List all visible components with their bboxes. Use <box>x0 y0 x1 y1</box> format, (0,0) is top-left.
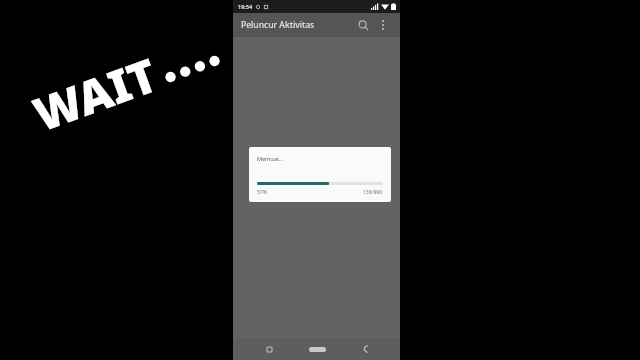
button[interactable]: Search <box>354 16 372 34</box>
button[interactable]: Back <box>357 341 373 357</box>
button[interactable]: More options <box>374 16 392 34</box>
staticText: 19:54 <box>238 3 253 10</box>
staticText: WAIT <box>25 43 166 145</box>
staticText: 57% <box>257 189 267 196</box>
staticText: Peluncur Aktivitas <box>241 19 315 31</box>
button[interactable]: Home <box>261 341 277 357</box>
button[interactable]: Recents <box>304 341 330 357</box>
staticText: 136/996 <box>363 189 383 196</box>
staticText: Memuat... <box>257 155 284 162</box>
